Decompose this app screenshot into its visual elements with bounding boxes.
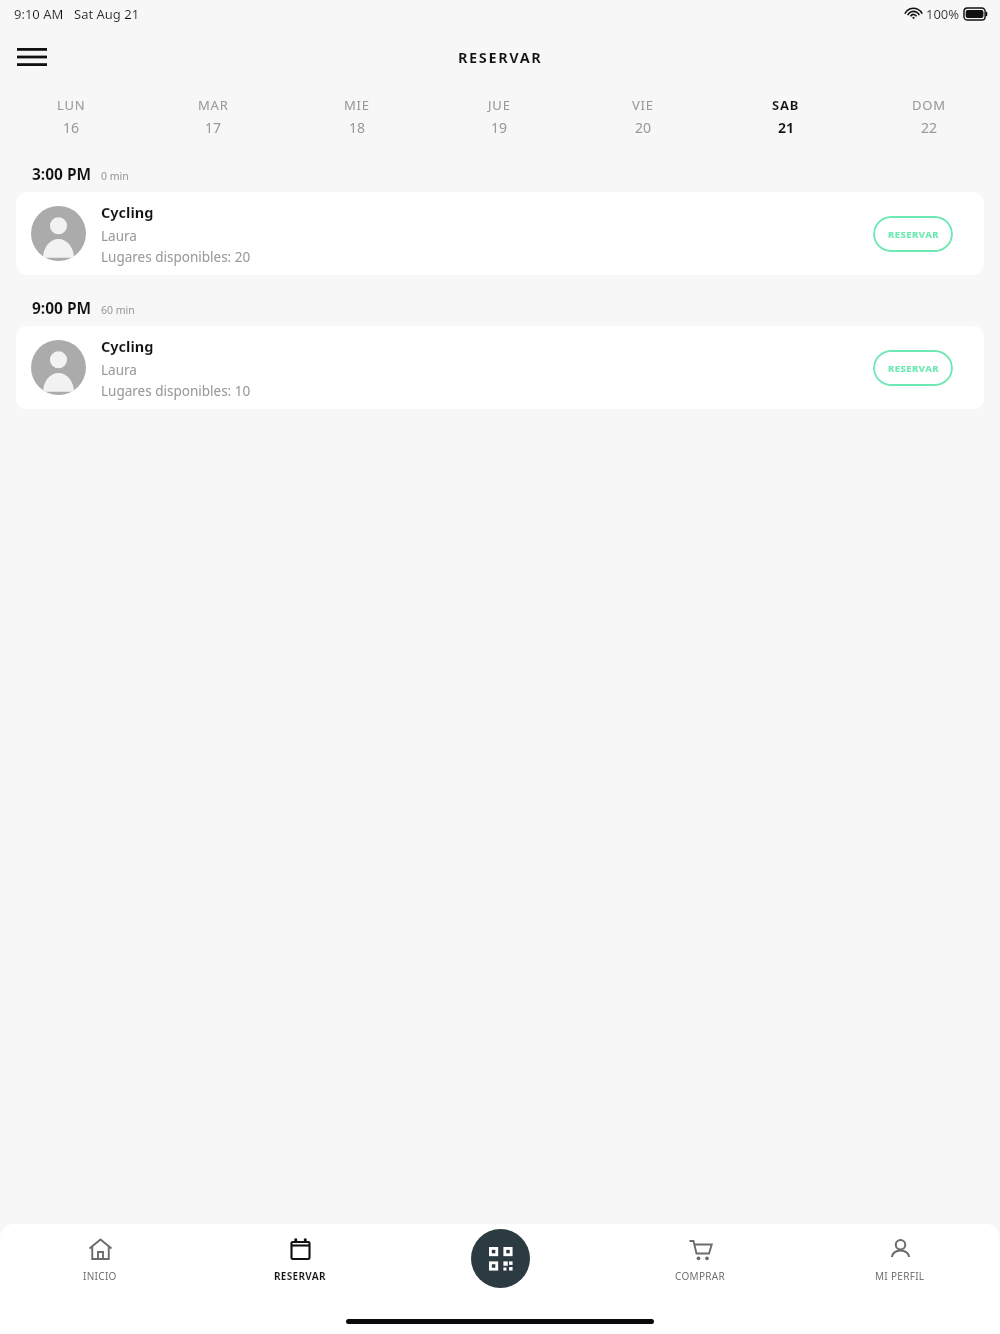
button[interactable]: SAB [714,85,857,147]
staticText: 17 [205,118,222,137]
staticText: Lugares disponibles: 20 [101,248,251,266]
staticText: Cycling [101,336,154,356]
staticText: Cycling [101,202,154,222]
button[interactable]: MI PERFIL [800,1224,1000,1296]
staticText: LUN [57,96,86,114]
staticText: 100% [926,5,960,23]
staticText: Lugares disponibles: 10 [101,382,251,400]
staticText: 20 [635,118,652,137]
staticText: DOM [912,96,946,114]
staticText: MI PERFIL [875,1269,925,1283]
staticText: JUE [488,96,511,114]
button[interactable]: JUE [428,85,571,147]
button[interactable]: VIE [571,85,714,147]
button[interactable]: Cycling [16,192,984,275]
staticText: 9:10 AM [14,5,64,23]
staticText: 0 min [101,169,129,183]
staticText: 16 [63,118,80,137]
button[interactable]: Cycling [16,326,984,409]
staticText: RESERVAR [888,228,939,241]
staticText: MAR [198,96,229,114]
staticText: Laura [101,227,137,245]
staticText: Sat Aug 21 [74,5,140,23]
staticText: 3:00 PM [32,163,92,184]
button[interactable]: LUN [0,85,142,147]
button[interactable]: MAR [142,85,285,147]
staticText: VIE [632,96,654,114]
staticText: 60 min [101,303,135,317]
button[interactable]: Menu [10,35,54,79]
staticText: 18 [349,118,366,137]
staticText: 21 [778,118,795,137]
staticText: COMPRAR [675,1269,725,1283]
button[interactable]: DOM [857,85,1000,147]
staticText: Laura [101,361,137,379]
button[interactable]: MIE [285,85,428,147]
staticText: 9:00 PM [32,297,92,318]
button[interactable]: COMPRAR [600,1224,800,1296]
staticText: 22 [921,118,938,137]
staticText: 19 [491,118,508,137]
staticText: RESERVAR [888,362,939,375]
staticText: INICIO [83,1269,117,1283]
button[interactable]: RESERVAR [873,216,953,252]
staticText: SAB [772,96,800,114]
button[interactable]: Scan QR code [471,1229,530,1288]
staticText: RESERVAR [458,47,543,67]
staticText: MIE [344,96,370,114]
button[interactable]: RESERVAR [873,350,953,386]
button[interactable]: RESERVAR [200,1224,400,1296]
staticText: RESERVAR [274,1269,326,1283]
button[interactable]: INICIO [0,1224,200,1296]
